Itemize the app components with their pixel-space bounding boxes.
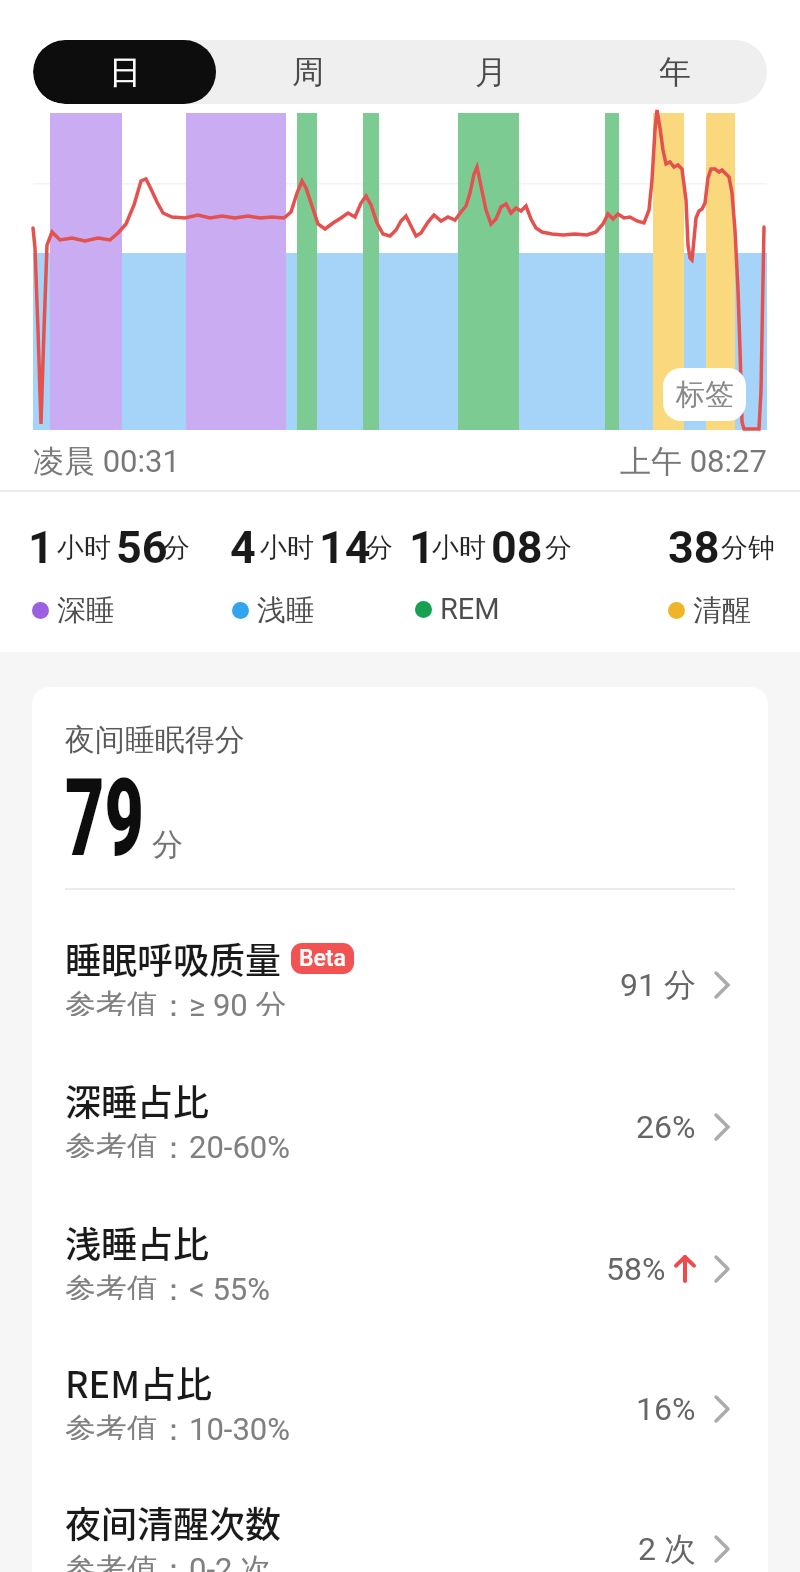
button[interactable]: REM占比 — [65, 1364, 730, 1454]
staticText: 56 — [116, 521, 168, 574]
staticText: Beta — [299, 945, 346, 972]
staticText: 凌晨 00:31 — [33, 442, 180, 481]
staticText: 清醒 — [693, 592, 751, 629]
button[interactable]: 睡眠呼吸质量 — [65, 940, 730, 1030]
button[interactable]: 月 — [399, 40, 583, 104]
staticText: 年 — [659, 52, 691, 92]
button[interactable]: 标签 — [663, 368, 746, 421]
staticText: 分 — [163, 531, 190, 565]
button[interactable]: 日 — [33, 40, 216, 104]
button[interactable]: 周 — [216, 40, 399, 104]
button[interactable]: 夜间清醒次数 — [65, 1504, 730, 1572]
staticText: 分 — [545, 531, 572, 565]
staticText: 深睡 — [57, 592, 115, 629]
staticText: 上午 08:27 — [620, 442, 767, 481]
staticText: 日 — [109, 52, 141, 92]
staticText: 58% — [606, 1250, 666, 1288]
staticText: REM — [440, 592, 500, 626]
staticText: 参考值：10-30% — [65, 1410, 290, 1440]
staticText: 26% — [636, 1108, 696, 1146]
staticText: 08 — [491, 521, 543, 574]
button[interactable]: 深睡占比 — [65, 1082, 730, 1172]
staticText: 分钟 — [721, 531, 775, 565]
button[interactable]: 浅睡占比 — [65, 1224, 730, 1314]
staticText: 分 — [152, 825, 183, 864]
staticText: 月 — [475, 52, 507, 92]
staticText: REM占比 — [65, 1356, 213, 1408]
staticText: 14 — [319, 521, 371, 574]
staticText: 周 — [292, 52, 324, 92]
staticText: 夜间清醒次数 — [65, 1496, 282, 1548]
staticText: 浅睡占比 — [65, 1216, 210, 1268]
staticText: 参考值：≥ 90 分 — [65, 986, 287, 1016]
staticText: 小时 — [432, 531, 486, 565]
staticText: 1 — [28, 521, 54, 574]
staticText: 4 — [230, 521, 256, 574]
staticText: 小时 — [57, 531, 111, 565]
staticText: 参考值：< 55% — [65, 1270, 270, 1300]
staticText: 睡眠呼吸质量 — [65, 932, 282, 984]
staticText: 小时 — [260, 531, 314, 565]
staticText: 2 次 — [638, 1529, 696, 1569]
staticText: 夜间睡眠得分 — [65, 721, 245, 759]
staticText: 参考值：20-60% — [65, 1128, 290, 1158]
staticText: 1 — [409, 521, 435, 574]
button[interactable]: 年 — [583, 40, 767, 104]
staticText: 浅睡 — [257, 592, 315, 629]
staticText: 79 — [65, 755, 144, 882]
staticText: 标签 — [676, 376, 734, 413]
staticText: 91 分 — [620, 965, 696, 1005]
staticText: 参考值：0-2 次 — [65, 1550, 272, 1572]
staticText: 分 — [366, 531, 393, 565]
staticText: 16% — [636, 1390, 696, 1428]
staticText: 38 — [668, 521, 720, 574]
staticText: 深睡占比 — [65, 1074, 210, 1126]
